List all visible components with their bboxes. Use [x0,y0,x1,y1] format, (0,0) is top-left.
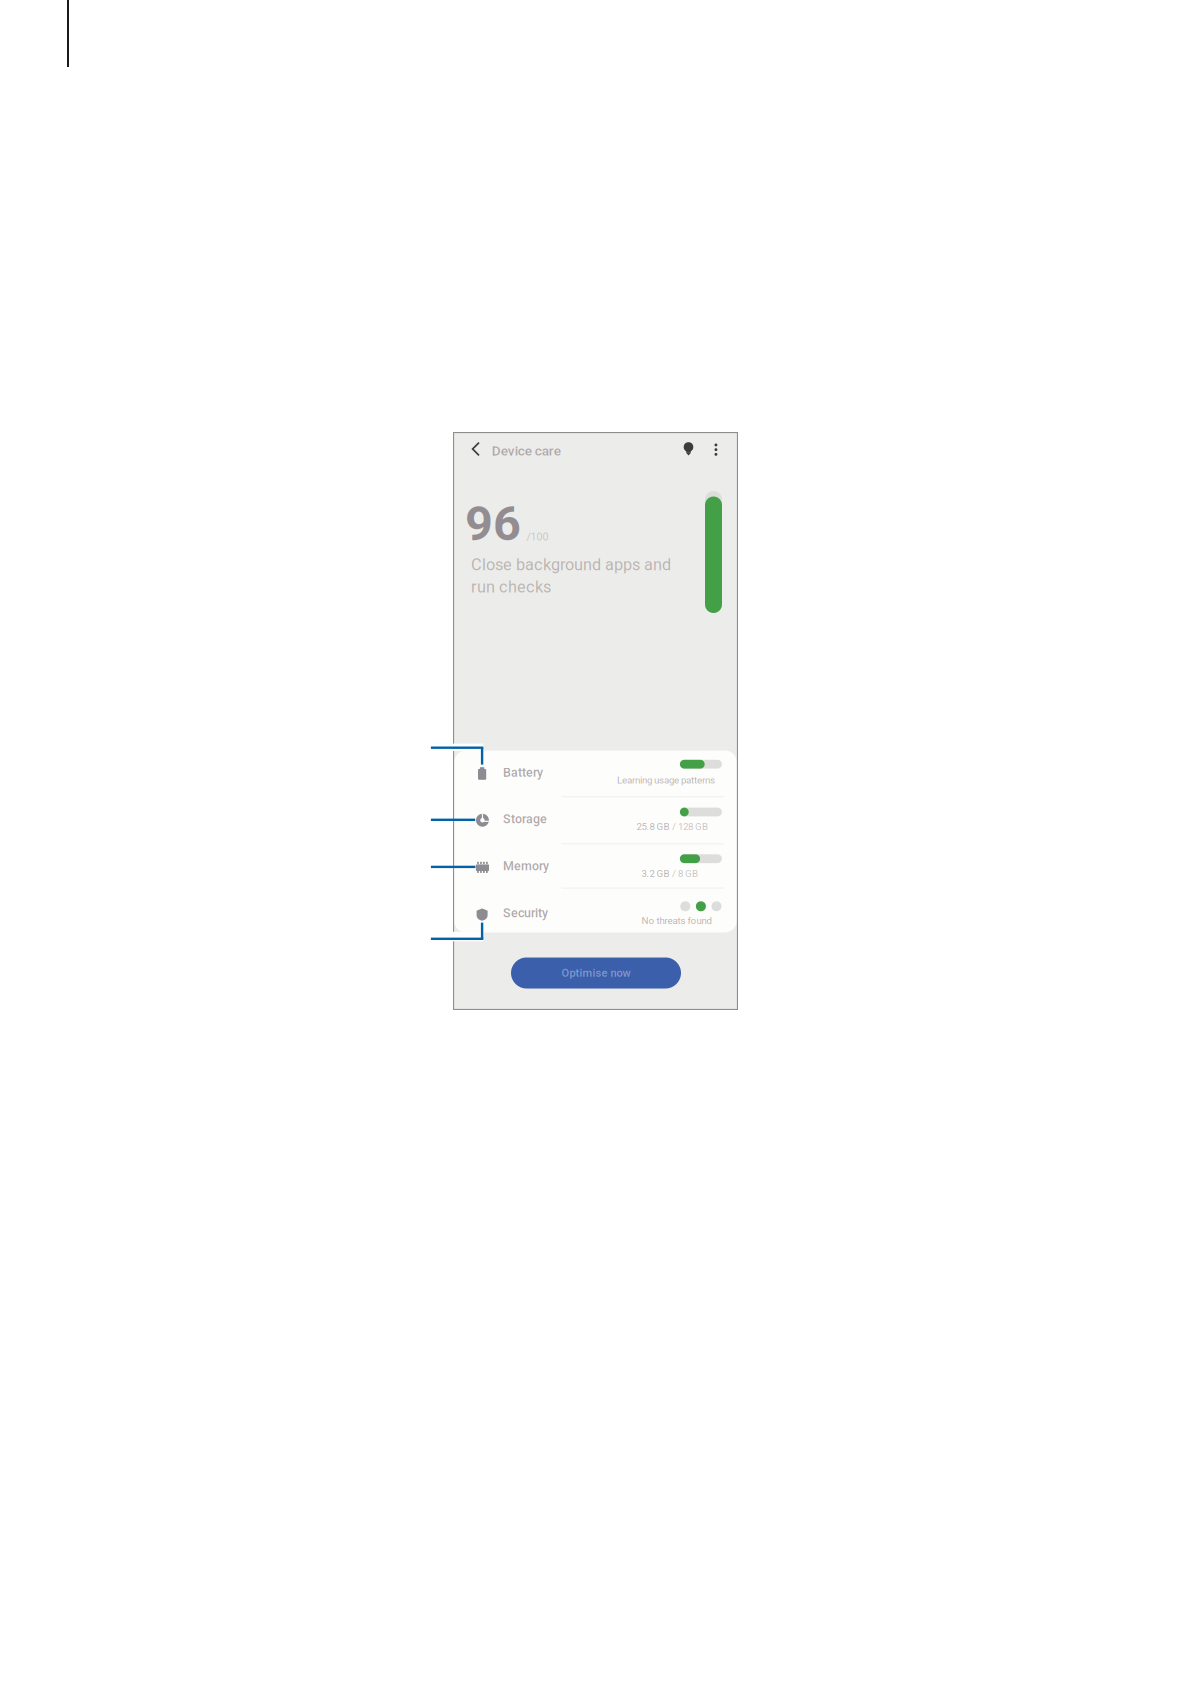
staticText: 3.2 GB [641,868,669,879]
staticText: Battery [503,765,543,780]
button[interactable]: Battery [454,750,737,795]
button[interactable]: Memory [454,844,737,889]
staticText: Security [503,906,548,920]
staticText: Close background apps and [471,555,671,574]
button[interactable]: Back [466,437,488,461]
staticText: / 8 GB [672,868,698,879]
staticText: Storage [503,812,547,826]
staticText: Optimise now [561,966,630,979]
staticText: run checks [471,577,551,597]
staticText: Device care [492,443,561,459]
button[interactable]: Optimise now [511,957,681,988]
staticText: No threats found [641,915,711,926]
button[interactable]: Tips [677,437,699,461]
staticText: /100 [526,530,548,543]
staticText: Memory [503,859,549,873]
button[interactable]: Device care [492,443,561,459]
button[interactable]: Storage [454,797,737,842]
staticText: 25.8 GB [636,821,669,832]
button[interactable]: Security [454,891,737,933]
staticText: / 128 GB [672,821,708,832]
staticText: Learning usage patterns [617,774,715,786]
staticText: 96 [465,495,521,552]
button[interactable]: More options [705,437,727,461]
